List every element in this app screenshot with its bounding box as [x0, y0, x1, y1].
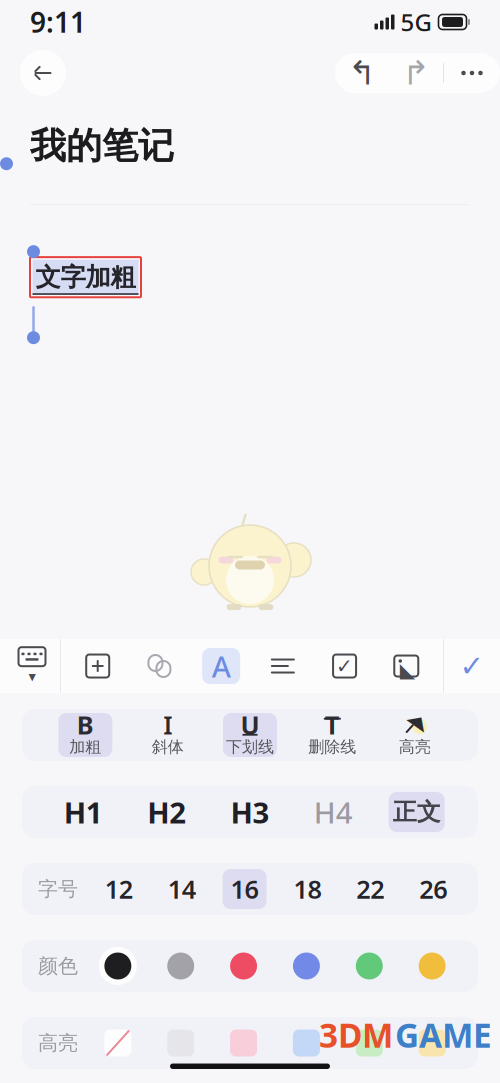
staticText: 下划线 — [226, 737, 274, 757]
staticText: ▾ — [28, 668, 35, 685]
staticText: ◥ — [407, 713, 422, 736]
button[interactable]: ◥ — [388, 713, 442, 757]
staticText: ◣ — [400, 659, 415, 681]
button[interactable]: List — [258, 639, 308, 693]
button[interactable]: H4 — [305, 792, 361, 832]
button[interactable]: H2 — [139, 792, 195, 832]
button[interactable]: Colour — [95, 944, 141, 988]
staticText: I — [163, 708, 172, 741]
staticText: 16 — [231, 872, 259, 906]
button[interactable]: Colour — [346, 944, 392, 988]
staticText: ↱ — [402, 54, 430, 92]
staticText: A — [212, 646, 231, 685]
staticText: 高亮 — [399, 737, 431, 757]
button[interactable]: Highlight colour — [221, 1021, 267, 1065]
staticText: H3 — [230, 792, 269, 831]
button[interactable]: 18 — [285, 869, 329, 909]
button[interactable]: U — [223, 713, 277, 757]
staticText: 高亮 — [38, 1031, 78, 1055]
button[interactable]: H3 — [222, 792, 278, 832]
button[interactable]: Highlight colour — [158, 1021, 204, 1065]
staticText: 文字加粗 — [35, 262, 135, 293]
staticText: 正文 — [393, 797, 441, 827]
staticText: H2 — [147, 792, 186, 831]
button[interactable]: Colour — [283, 944, 329, 988]
button[interactable]: Colour — [221, 944, 267, 988]
button[interactable]: 12 — [97, 869, 141, 909]
button[interactable]: Back — [13, 48, 73, 98]
staticText: 5G — [400, 6, 431, 38]
staticText: 我的笔记 — [30, 124, 174, 168]
button[interactable]: 正文 — [389, 792, 445, 832]
staticText: H4 — [314, 792, 353, 831]
button[interactable]: H1 — [55, 792, 111, 832]
staticText: H1 — [64, 792, 103, 831]
button[interactable]: Hide keyboard — [4, 639, 60, 693]
button[interactable]: Insert — [73, 639, 123, 693]
staticText: 删除线 — [308, 737, 356, 757]
staticText: U — [240, 708, 259, 741]
button[interactable]: No highlight — [95, 1021, 141, 1065]
button[interactable]: 16 — [223, 869, 267, 909]
staticText: ↰ — [348, 54, 376, 92]
button[interactable]: Colour — [409, 944, 455, 988]
staticText: B — [77, 708, 94, 741]
staticText: ✓ — [336, 655, 353, 677]
staticText: 9:11 — [30, 3, 86, 41]
button[interactable]: Colour — [158, 944, 204, 988]
button[interactable]: I — [141, 713, 195, 757]
button[interactable]: Text format — [196, 639, 246, 693]
button[interactable]: T — [305, 713, 359, 757]
staticText: 字号 — [38, 877, 78, 901]
button[interactable]: Highlight colour — [409, 1021, 455, 1065]
staticText: 18 — [293, 872, 321, 906]
staticText: 26 — [419, 872, 447, 906]
button[interactable]: Highlight colour — [283, 1021, 329, 1065]
staticText: ✓ — [459, 649, 484, 683]
button[interactable]: 14 — [160, 869, 204, 909]
staticText: T — [325, 708, 340, 741]
staticText: GAME — [395, 1013, 492, 1057]
button[interactable]: Link — [134, 639, 184, 693]
button[interactable]: Insert image — [381, 639, 431, 693]
button[interactable]: 22 — [348, 869, 392, 909]
button[interactable]: 26 — [411, 869, 455, 909]
button[interactable]: Undo — [335, 53, 389, 93]
button[interactable]: B — [58, 713, 112, 757]
staticText: 斜体 — [152, 737, 184, 757]
button[interactable]: Checklist — [320, 639, 370, 693]
staticText: 3DM — [319, 1013, 393, 1057]
staticText: 22 — [356, 872, 384, 906]
staticText: 14 — [168, 872, 196, 906]
button[interactable]: Done — [444, 639, 500, 693]
staticText: 颜色 — [38, 954, 78, 978]
staticText: 加粗 — [69, 737, 101, 757]
button[interactable]: More — [444, 53, 500, 93]
staticText: 12 — [105, 872, 133, 906]
button[interactable]: Redo — [389, 53, 443, 93]
button[interactable]: Highlight colour — [346, 1021, 392, 1065]
